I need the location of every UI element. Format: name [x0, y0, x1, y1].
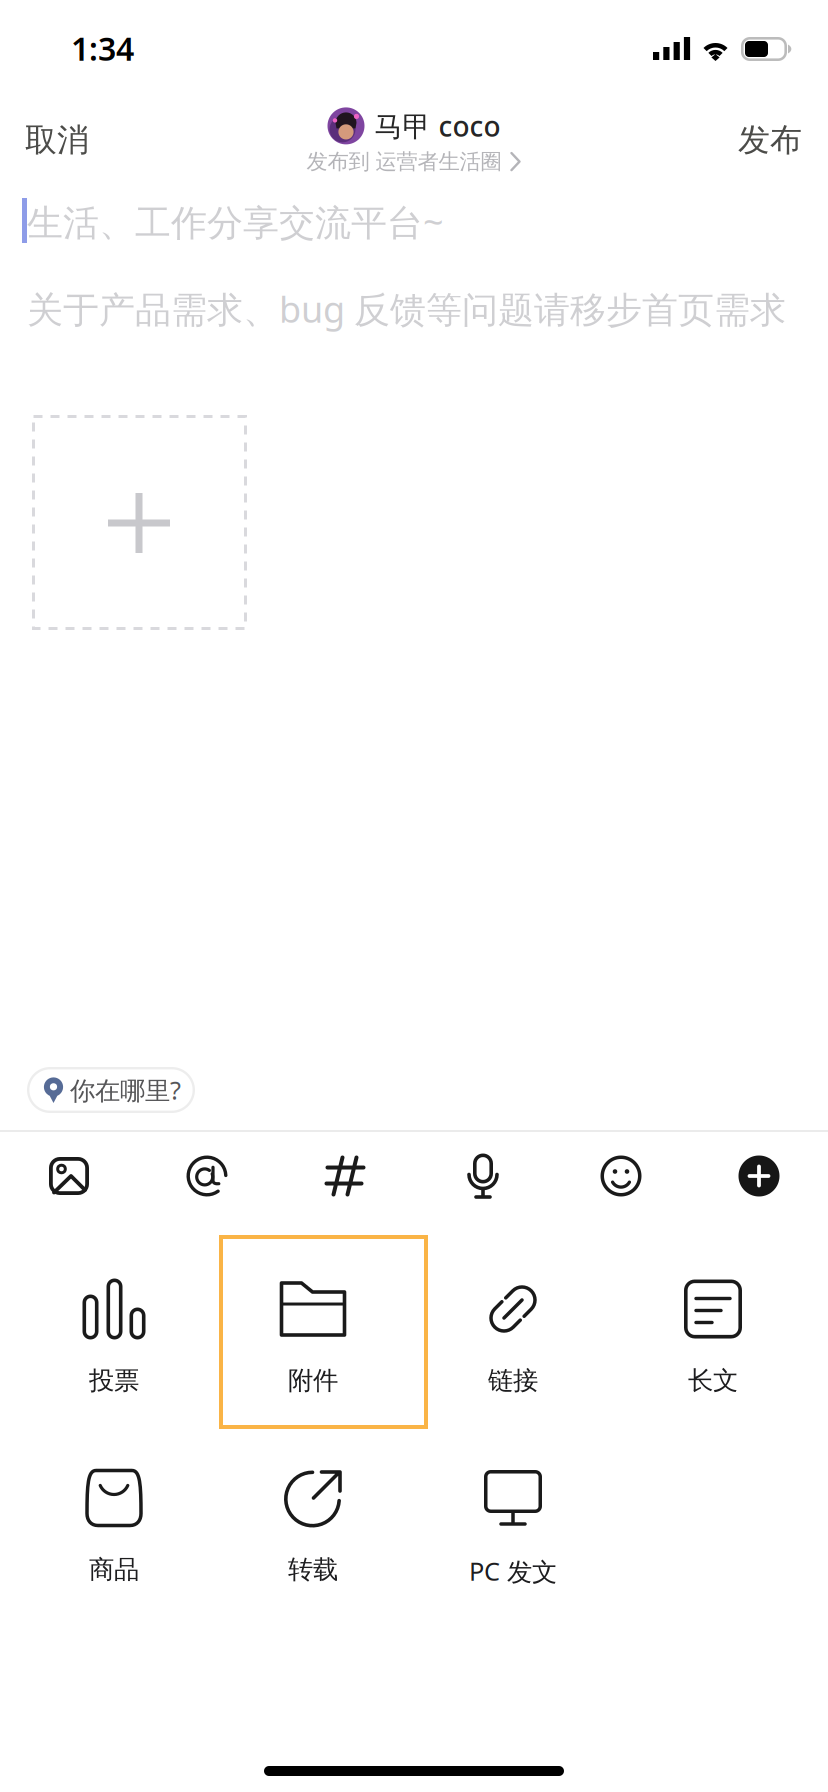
button[interactable]: Voice input	[427, 1137, 539, 1215]
staticText: 生活、工作分享交流平台~	[27, 198, 444, 246]
staticText: 附件	[288, 1365, 338, 1396]
button[interactable]: 投票	[14, 1235, 214, 1429]
staticText: 商品	[89, 1554, 139, 1585]
button[interactable]: Mention someone	[151, 1137, 263, 1215]
button[interactable]: More options	[703, 1137, 815, 1215]
staticText: PC 发文	[469, 1554, 557, 1588]
staticText: 关于产品需求、bug 反馈等问题请移步首页需求	[27, 285, 786, 333]
staticText: 1:34	[71, 27, 134, 69]
staticText: 投票	[89, 1365, 139, 1396]
button[interactable]: Add photo	[32, 415, 247, 630]
staticText: 转载	[288, 1554, 338, 1585]
button[interactable]: 取消	[0, 104, 125, 176]
staticText: 你在哪里?	[70, 1073, 181, 1107]
staticText: 取消	[25, 120, 89, 160]
staticText: 发布到 运营者生活圈	[306, 148, 501, 175]
button[interactable]: 长文	[613, 1235, 813, 1429]
button[interactable]: 商品	[14, 1424, 214, 1618]
staticText: 发布	[738, 120, 802, 160]
button[interactable]: 你在哪里?	[27, 1067, 195, 1113]
button[interactable]: 附件	[213, 1235, 413, 1429]
button[interactable]: 转载	[213, 1424, 413, 1618]
staticText: 长文	[688, 1365, 738, 1396]
staticText: 链接	[488, 1365, 538, 1396]
button[interactable]: 链接	[413, 1235, 613, 1429]
button[interactable]: 发布	[702, 104, 828, 176]
button[interactable]: 马甲 coco	[0, 100, 828, 182]
button[interactable]: Add image	[13, 1137, 125, 1215]
button[interactable]: Add topic	[289, 1137, 401, 1215]
button[interactable]: Emoji	[565, 1137, 677, 1215]
button[interactable]: PC 发文	[413, 1424, 613, 1618]
staticText: 马甲 coco	[374, 107, 500, 144]
